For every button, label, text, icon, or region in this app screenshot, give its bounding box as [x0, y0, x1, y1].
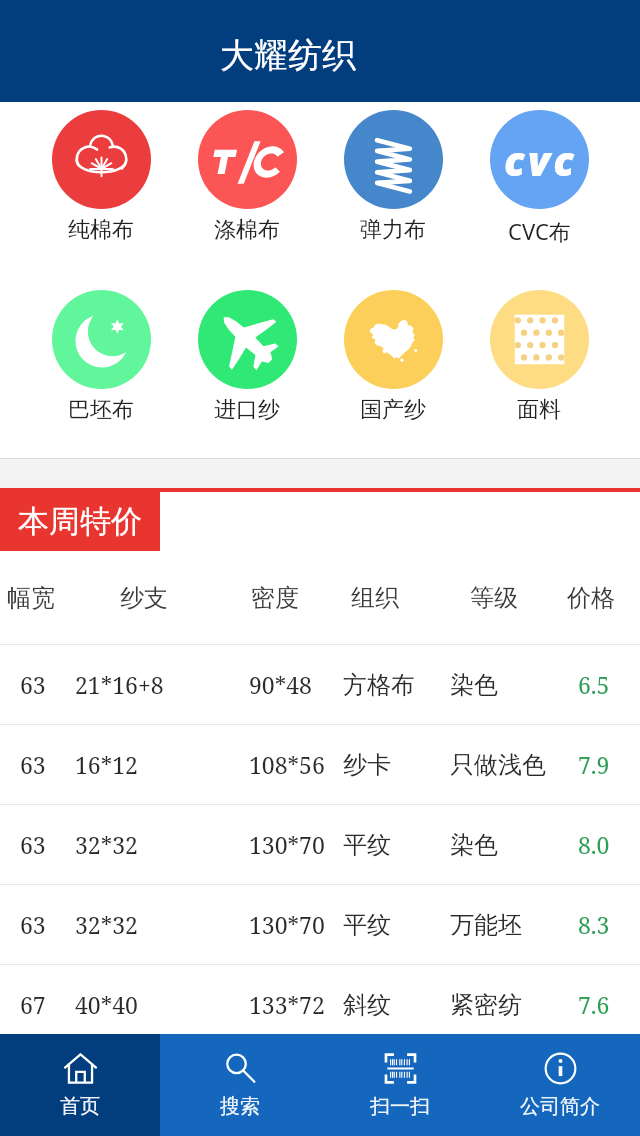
staticText: 纯棉布: [68, 216, 134, 244]
staticText: 方格布: [343, 670, 415, 700]
staticText: 8.3: [578, 909, 610, 940]
staticText: cvc: [504, 132, 578, 188]
staticText: 90*48: [249, 669, 312, 700]
staticText: 染色: [450, 830, 498, 860]
button[interactable]: 63: [0, 645, 640, 724]
staticText: 国产纱: [360, 396, 426, 424]
staticText: 弹力布: [360, 216, 426, 244]
staticText: 价格: [567, 583, 615, 613]
button[interactable]: 首页: [0, 1034, 160, 1136]
staticText: 涤棉布: [214, 216, 280, 244]
staticText: 幅宽: [7, 583, 55, 613]
staticText: 16*12: [75, 749, 138, 780]
button[interactable]: 巴坯布: [28, 290, 174, 424]
staticText: 只做浅色: [450, 750, 546, 780]
staticText: 纱支: [120, 583, 168, 613]
staticText: 密度: [251, 583, 299, 613]
staticText: 搜索: [220, 1094, 260, 1119]
staticText: 67: [20, 989, 46, 1020]
staticText: 21*16+8: [75, 669, 164, 700]
staticText: 巴坯布: [68, 396, 134, 424]
button[interactable]: 进口纱: [174, 290, 320, 424]
staticText: 组织: [351, 583, 399, 613]
staticText: 染色: [450, 670, 498, 700]
staticText: 平纹: [343, 830, 391, 860]
staticText: 平纹: [343, 910, 391, 940]
button[interactable]: 涤棉布: [174, 110, 320, 244]
button[interactable]: 公司简介: [480, 1034, 640, 1136]
button[interactable]: 扫一扫: [320, 1034, 480, 1136]
staticText: 130*70: [249, 909, 325, 940]
button[interactable]: cvc: [466, 110, 612, 246]
staticText: 大耀纺织: [220, 34, 356, 77]
staticText: 40*40: [75, 989, 138, 1020]
button[interactable]: 67: [0, 965, 640, 1044]
staticText: 108*56: [249, 749, 325, 780]
staticText: 63: [20, 749, 46, 780]
staticText: 进口纱: [214, 396, 280, 424]
staticText: 133*72: [249, 989, 325, 1020]
button[interactable]: 63: [0, 805, 640, 884]
button[interactable]: 弹力布: [320, 110, 466, 244]
staticText: 6.5: [578, 669, 610, 700]
button[interactable]: 纯棉布: [28, 110, 174, 244]
staticText: 本周特价: [18, 502, 142, 541]
staticText: 首页: [60, 1094, 100, 1119]
staticText: 130*70: [249, 829, 325, 860]
staticText: 32*32: [75, 909, 138, 940]
staticText: 7.9: [578, 749, 610, 780]
staticText: 63: [20, 909, 46, 940]
staticText: 63: [20, 669, 46, 700]
button[interactable]: 国产纱: [320, 290, 466, 424]
staticText: 斜纹: [343, 990, 391, 1020]
staticText: 紧密纺: [450, 990, 522, 1020]
staticText: 万能坯: [450, 910, 522, 940]
staticText: 纱卡: [343, 750, 391, 780]
staticText: 7.6: [578, 989, 610, 1020]
button[interactable]: 搜索: [160, 1034, 320, 1136]
staticText: 等级: [470, 583, 518, 613]
button[interactable]: 63: [0, 885, 640, 964]
button[interactable]: 本周特价: [0, 492, 160, 551]
button[interactable]: 63: [0, 725, 640, 804]
staticText: 扫一扫: [370, 1094, 430, 1119]
staticText: 公司简介: [520, 1094, 600, 1119]
staticText: 32*32: [75, 829, 138, 860]
staticText: CVC布: [508, 216, 571, 246]
staticText: 63: [20, 829, 46, 860]
staticText: 8.0: [578, 829, 610, 860]
button[interactable]: 面料: [466, 290, 612, 424]
staticText: 面料: [517, 396, 561, 424]
